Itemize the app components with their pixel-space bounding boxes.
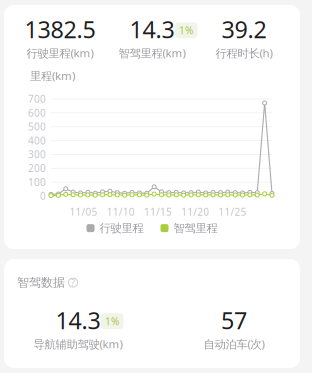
staticText: 智驾里程(km): [118, 45, 185, 61]
staticText: 自动泊车(次): [203, 336, 264, 352]
staticText: 500: [28, 120, 46, 133]
staticText: 11/10: [107, 205, 135, 219]
staticText: 智驾里程: [173, 221, 217, 235]
staticText: 行程时长(h): [215, 45, 272, 61]
staticText: 0: [40, 189, 46, 203]
staticText: 600: [28, 106, 46, 120]
staticText: 里程(km): [30, 68, 75, 83]
staticText: 导航辅助驾驶(km): [33, 336, 122, 352]
staticText: 行驶里程(km): [26, 45, 93, 61]
staticText: 57: [221, 304, 247, 336]
staticText: 14.3: [55, 304, 100, 336]
staticText: 11/05: [70, 205, 98, 219]
staticText: 11/20: [181, 205, 209, 219]
staticText: 100: [28, 175, 46, 189]
staticText: 39.2: [221, 13, 266, 45]
staticText: 300: [28, 147, 46, 161]
staticText: 400: [28, 134, 46, 147]
staticText: 1%: [105, 314, 119, 328]
staticText: 1382.5: [24, 13, 95, 45]
staticText: 智驾数据: [17, 275, 65, 290]
staticText: 14.3: [129, 13, 174, 45]
staticText: 11/15: [144, 205, 172, 219]
staticText: 200: [28, 161, 46, 175]
staticText: 行驶里程: [99, 221, 143, 235]
staticText: ?: [71, 277, 75, 288]
staticText: 11/25: [218, 205, 246, 219]
staticText: 700: [28, 92, 46, 106]
staticText: 1%: [179, 23, 193, 37]
